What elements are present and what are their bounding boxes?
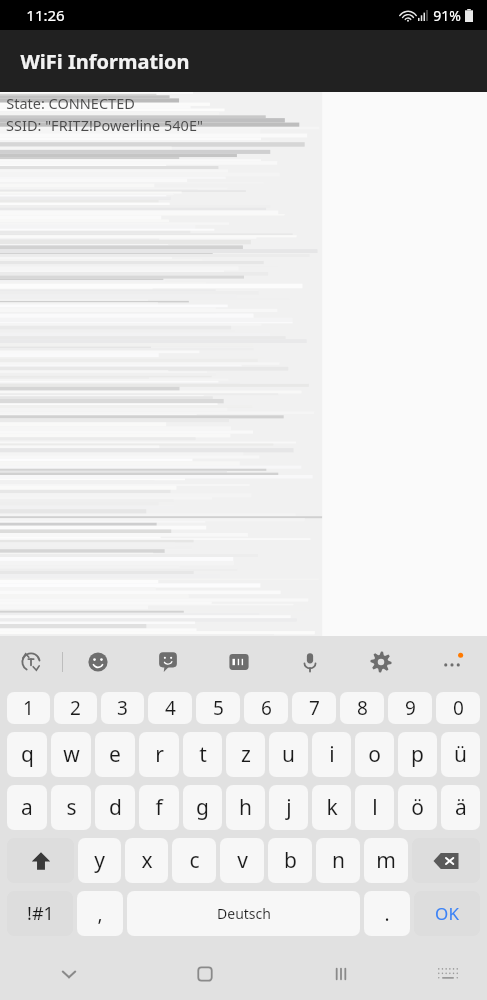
button[interactable]: y	[78, 838, 121, 883]
button[interactable]: 5	[196, 692, 240, 724]
button[interactable]: 1	[7, 692, 50, 724]
button[interactable]: 2	[54, 692, 97, 724]
button[interactable]: Deutsch	[127, 891, 360, 936]
staticText: a	[21, 793, 33, 822]
button[interactable]: d	[95, 785, 135, 830]
button[interactable]: OK	[414, 891, 480, 936]
staticText: !#1	[27, 901, 54, 926]
button[interactable]: 4	[148, 692, 192, 724]
staticText: g	[196, 793, 209, 822]
staticText: ü	[454, 740, 467, 769]
staticText: q	[21, 740, 34, 769]
button[interactable]: 3	[101, 692, 144, 724]
button[interactable]: v	[220, 838, 264, 883]
staticText: ö	[411, 793, 424, 822]
button[interactable]: Translate	[0, 636, 62, 688]
staticText: p	[411, 740, 424, 769]
button[interactable]: a	[7, 785, 47, 830]
staticText: 1	[23, 695, 34, 721]
staticText: State: CONNECTED	[6, 93, 135, 113]
staticText: ,	[97, 901, 103, 927]
button[interactable]: 7	[292, 692, 336, 724]
staticText: Deutsch	[217, 904, 271, 923]
staticText: c	[189, 846, 200, 875]
button[interactable]: r	[139, 732, 179, 777]
staticText: s	[66, 793, 77, 822]
staticText: e	[109, 740, 121, 769]
staticText: w	[63, 740, 80, 769]
staticText: y	[94, 846, 105, 875]
button[interactable]: ö	[398, 785, 437, 830]
staticText: 8	[357, 695, 368, 721]
button[interactable]: t	[183, 732, 222, 777]
staticText: x	[141, 846, 153, 875]
staticText: 4	[165, 695, 176, 721]
button[interactable]: Settings	[345, 636, 416, 688]
button[interactable]: g	[183, 785, 222, 830]
staticText: b	[284, 846, 297, 875]
staticText: OK	[435, 902, 459, 925]
button[interactable]: .	[364, 891, 410, 936]
staticText: u	[282, 740, 295, 769]
staticText: v	[237, 846, 248, 875]
button[interactable]: b	[268, 838, 312, 883]
button[interactable]: c	[172, 838, 216, 883]
button[interactable]: o	[355, 732, 394, 777]
button[interactable]: i	[312, 732, 351, 777]
button[interactable]: w	[51, 732, 91, 777]
button[interactable]: q	[7, 732, 47, 777]
staticText: 5	[213, 695, 224, 721]
staticText: n	[332, 846, 345, 875]
staticText: t	[199, 740, 207, 769]
staticText: j	[286, 793, 292, 822]
staticText: 3	[117, 695, 128, 721]
button[interactable]: 9	[388, 692, 432, 724]
button[interactable]: x	[125, 838, 168, 883]
button[interactable]: ,	[77, 891, 123, 936]
button[interactable]: Home	[137, 948, 273, 1000]
button[interactable]: Emoji	[63, 636, 133, 688]
staticText: o	[368, 740, 381, 769]
staticText: SSID: "FRITZ!Powerline 540E"	[6, 115, 203, 135]
staticText: 9	[405, 695, 416, 721]
staticText: i	[329, 740, 335, 769]
button[interactable]: GIF	[203, 636, 274, 688]
button[interactable]: Shift	[7, 838, 74, 883]
button[interactable]: Recents	[273, 948, 409, 1000]
button[interactable]: j	[269, 785, 308, 830]
button[interactable]: Keyboard layout	[409, 948, 487, 1000]
button[interactable]: ü	[441, 732, 480, 777]
button[interactable]: k	[312, 785, 351, 830]
button[interactable]: h	[226, 785, 265, 830]
staticText: 7	[309, 695, 320, 721]
button[interactable]: e	[95, 732, 135, 777]
staticText: k	[326, 793, 338, 822]
staticText: r	[155, 740, 164, 769]
button[interactable]: Voice input	[274, 636, 345, 688]
button[interactable]: ä	[441, 785, 480, 830]
staticText: l	[372, 793, 378, 822]
staticText: 2	[70, 695, 81, 721]
button[interactable]: More options	[416, 636, 487, 688]
staticText: 0	[453, 695, 464, 721]
button[interactable]: l	[355, 785, 394, 830]
button[interactable]: u	[269, 732, 308, 777]
staticText: z	[241, 740, 251, 769]
button[interactable]: 0	[436, 692, 480, 724]
button[interactable]: z	[226, 732, 265, 777]
button[interactable]: m	[364, 838, 408, 883]
button[interactable]: Hide keyboard	[0, 948, 137, 1000]
staticText: 6	[261, 695, 272, 721]
button[interactable]: !#1	[7, 891, 73, 936]
button[interactable]: 6	[244, 692, 288, 724]
button[interactable]: n	[316, 838, 360, 883]
button[interactable]: f	[139, 785, 179, 830]
staticText: .	[384, 901, 390, 927]
button[interactable]: Backspace	[412, 838, 480, 883]
staticText: d	[109, 793, 122, 822]
staticText: 91%	[433, 6, 461, 25]
button[interactable]: 8	[340, 692, 384, 724]
button[interactable]: Stickers	[133, 636, 203, 688]
button[interactable]: p	[398, 732, 437, 777]
button[interactable]: s	[51, 785, 91, 830]
